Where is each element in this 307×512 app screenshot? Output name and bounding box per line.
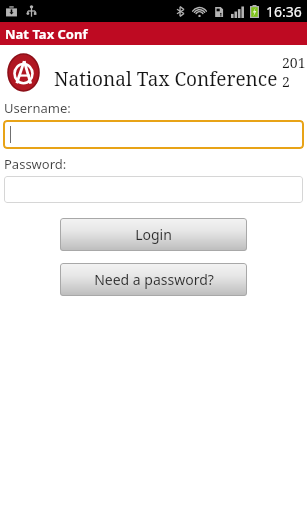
staticText: Need a password?	[94, 270, 214, 289]
staticText: 16:36	[266, 2, 302, 21]
staticText: Nat Tax Conf	[5, 25, 88, 43]
button[interactable]: Password field	[4, 176, 303, 203]
button[interactable]: Username field	[3, 120, 304, 149]
other: University of Alabama logo	[8, 54, 39, 91]
staticText: Password:	[4, 155, 67, 173]
button[interactable]: Need a password?	[60, 263, 247, 296]
staticText: Username:	[4, 99, 71, 117]
staticText: National Tax Conference	[54, 66, 278, 92]
staticText: 2012	[282, 53, 307, 91]
button[interactable]: Login	[60, 218, 247, 251]
staticText: Login	[135, 225, 172, 244]
